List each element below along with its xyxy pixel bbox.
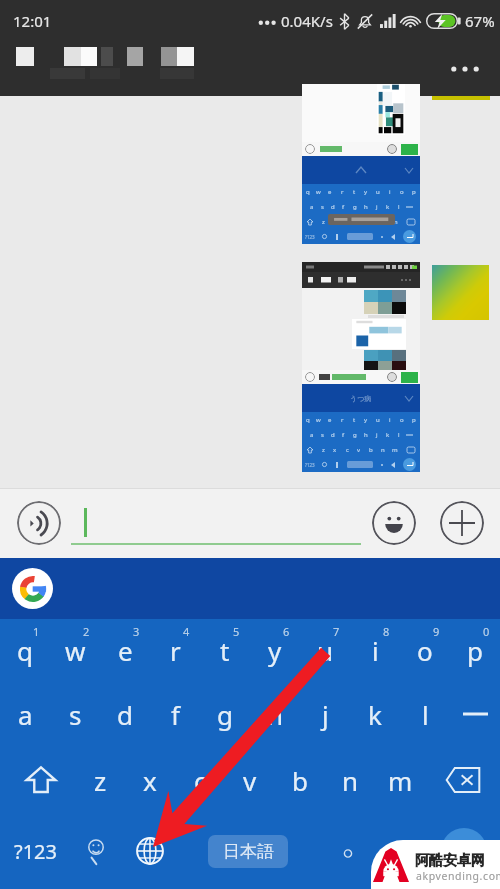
staticText: t [353,188,356,196]
button[interactable]: n [325,747,375,813]
staticText: d [331,203,335,211]
button[interactable]: v [225,747,275,813]
staticText: r [170,633,181,668]
staticText: h [364,203,368,211]
staticText: p [412,416,416,424]
staticText: j [376,431,378,439]
staticText: 0 [483,624,490,639]
button[interactable]: f [150,681,200,747]
staticText: p [412,188,416,196]
button[interactable]: y [250,619,300,681]
button[interactable]: g [200,681,250,747]
staticText: r [341,416,344,424]
staticText: 日本語 [223,841,274,862]
button[interactable]: x [125,747,175,813]
button[interactable]: o [400,619,450,681]
staticText: n [342,763,359,798]
button[interactable]: d [100,681,150,747]
staticText: p [467,633,483,668]
staticText: e [118,633,133,668]
button[interactable]: s [50,681,100,747]
staticText: j [376,203,378,211]
button[interactable]: Previous [378,813,428,889]
button[interactable]: Add attachment [440,501,484,545]
button[interactable]: m [375,747,425,813]
button[interactable]: w [50,619,100,681]
button[interactable]: Switch language [122,813,178,889]
button[interactable]: z [75,747,125,813]
staticText: m [392,446,398,454]
button[interactable]: t [200,619,250,681]
staticText: g [353,431,357,439]
button[interactable]: r [150,619,200,681]
staticText: s [321,431,324,439]
button[interactable] [318,813,378,889]
staticText: h [364,431,368,439]
staticText: o [400,188,404,196]
staticText: t [353,416,356,424]
button[interactable]: e [100,619,150,681]
staticText: w [316,188,321,196]
staticText: u [317,633,334,668]
staticText: 8 [383,624,390,639]
button[interactable]: Emoji and handwriting [70,813,122,889]
staticText: うつ病 [350,394,372,403]
button[interactable]: Dash [450,681,500,747]
staticText: 67% [465,11,495,31]
button[interactable]: Backspace [425,747,500,813]
button[interactable]: Voice message [17,501,61,545]
staticText: i [372,633,379,668]
button[interactable]: b [275,747,325,813]
staticText: 7 [333,624,340,639]
staticText: a [310,431,314,439]
staticText: f [342,203,345,211]
staticText: c [194,763,207,798]
staticText: n [381,218,385,226]
button[interactable]: Emoji [372,501,416,545]
staticText: ?123 [14,838,57,865]
button[interactable]: Enter [428,813,500,889]
staticText: m [388,763,413,798]
button[interactable]: c [175,747,225,813]
staticText: y [364,188,368,196]
staticText: y [268,633,282,668]
button[interactable]: p [450,619,500,681]
staticText: l [422,697,429,732]
staticText: l [398,203,400,211]
button[interactable] [71,494,361,552]
button[interactable]: More options [442,46,488,92]
button[interactable]: 日本語 [178,813,318,889]
button[interactable]: i [350,619,400,681]
button[interactable]: Google search [12,568,53,609]
staticText: u [376,416,380,424]
staticText: f [342,431,345,439]
staticText: v [357,218,361,226]
button[interactable]: Shift [0,747,75,813]
staticText: z [322,446,325,454]
staticText: o [417,633,433,668]
button[interactable]: h [250,681,300,747]
staticText: v [357,446,361,454]
staticText: x [333,446,337,454]
staticText: w [65,633,86,668]
staticText: a [18,697,33,732]
staticText: q [17,633,33,668]
button[interactable]: u [300,619,350,681]
staticText: q [306,416,310,424]
staticText: k [386,203,390,211]
button[interactable]: j [300,681,350,747]
staticText: c [346,218,349,226]
button[interactable]: l [400,681,450,747]
staticText: c [346,446,349,454]
staticText: ?123 [305,462,315,468]
button[interactable]: q [0,619,50,681]
button[interactable]: a [0,681,50,747]
button[interactable]: ?123 [0,813,70,889]
staticText: f [171,697,180,732]
staticText: s [321,203,324,211]
staticText: r [341,188,344,196]
staticText: x [143,763,157,798]
staticText: t [220,633,230,668]
button[interactable]: k [350,681,400,747]
staticText: g [353,203,357,211]
